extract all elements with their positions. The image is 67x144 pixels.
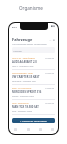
staticText: Suchen — [12, 49, 22, 52]
button[interactable]: Tab 0 — [9, 124, 22, 134]
staticText: Fahrzeuge — [12, 37, 33, 42]
staticText: Alle Fahrzeuge deiner Organisation — [12, 43, 47, 46]
staticText: Lkw 3 · Standort Nord — [12, 65, 34, 68]
staticText: 14.03.24 — [45, 87, 55, 90]
staticText: LKW 7.5T · VERFÜGBAR — [12, 57, 35, 60]
staticText: Pkw · Standort Mitte — [12, 110, 32, 113]
staticText: 13.03.24 — [45, 72, 55, 75]
button[interactable]: Tab 3 — [46, 124, 58, 134]
button[interactable]: LKW · WARTUNG — [12, 100, 55, 115]
button[interactable]: LKW 7.5T · VERFÜGBAR — [12, 55, 55, 70]
staticText: MAN TGX 18.500 SAT — [12, 105, 39, 109]
staticText: TRANSPORTER · FREI — [12, 72, 33, 75]
button[interactable]: + Fahrzeug hinzufügen — [12, 118, 55, 123]
staticText: ▮▮▮ — [51, 25, 55, 28]
button[interactable]: Tab 1 — [22, 124, 34, 134]
staticText: MERCEDES SPRINT 316 — [12, 90, 42, 94]
staticText: 12.03.24 — [45, 57, 55, 60]
staticText: ⋯ ☰ — [49, 38, 55, 41]
staticText: AUDI A4 AVANT 2.0 — [12, 60, 37, 64]
button[interactable]: Suchen — [12, 47, 55, 53]
staticText: Organisme — [19, 5, 43, 11]
staticText: LKW · WARTUNG — [12, 102, 29, 105]
staticText: Kombi · Standort West — [12, 95, 34, 98]
staticText: 9:41 — [12, 25, 17, 28]
staticText: PKW · IN NUTZUNG — [12, 87, 32, 90]
staticText: + Fahrzeug hinzufügen — [20, 119, 48, 122]
staticText: 15.03.24 — [45, 102, 55, 105]
button[interactable]: TRANSPORTER · FREI — [12, 70, 55, 85]
button[interactable]: PKW · IN NUTZUNG — [12, 85, 55, 100]
button[interactable]: Tab 2 — [34, 124, 46, 134]
staticText: Fahrzeug · Standort Süd — [12, 80, 36, 83]
staticText: VW CRAFTER 35 KAST — [12, 75, 40, 79]
